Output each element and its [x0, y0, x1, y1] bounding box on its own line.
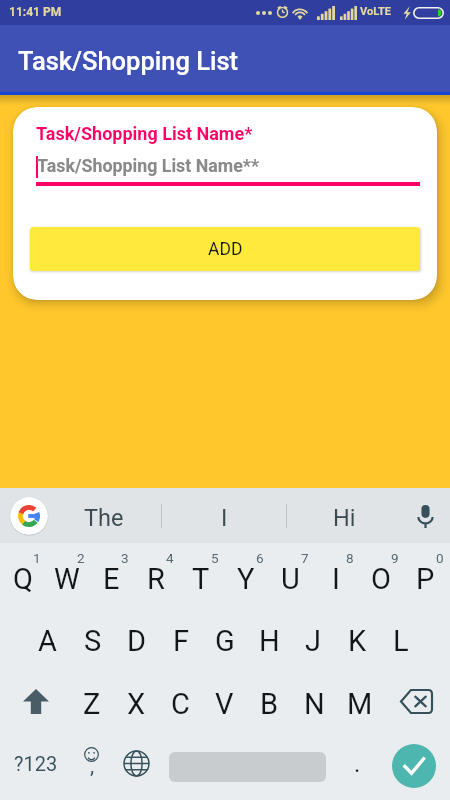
staticText: K: [348, 624, 367, 658]
staticText: V: [215, 687, 234, 721]
button[interactable]: ?123: [0, 733, 72, 800]
staticText: 0: [436, 550, 444, 566]
button[interactable]: G: [203, 606, 247, 670]
button[interactable]: Q: [1, 543, 45, 606]
button[interactable]: Google: [10, 497, 48, 535]
button[interactable]: U: [268, 543, 313, 606]
staticText: D: [127, 624, 147, 658]
staticText: Q: [13, 562, 33, 596]
staticText: 5: [211, 550, 219, 566]
staticText: H: [259, 624, 280, 658]
button[interactable]: X: [114, 670, 158, 733]
button[interactable]: [170, 488, 286, 543]
button[interactable]: .: [326, 733, 378, 800]
staticText: Hi: [333, 504, 356, 532]
button[interactable]: N: [292, 670, 337, 733]
staticText: O: [371, 562, 391, 596]
staticText: Z: [83, 687, 101, 721]
staticText: I: [221, 504, 228, 532]
button[interactable]: Z: [70, 670, 114, 733]
button[interactable]: [163, 733, 326, 800]
button[interactable]: W: [45, 543, 89, 606]
button[interactable]: [55, 488, 170, 543]
button[interactable]: R: [133, 543, 178, 606]
staticText: A: [38, 624, 57, 658]
staticText: 7: [301, 550, 309, 566]
button[interactable]: ADD: [30, 227, 420, 271]
staticText: J: [305, 624, 322, 658]
staticText: W: [54, 562, 80, 596]
staticText: I: [332, 562, 340, 596]
button[interactable]: O: [358, 543, 403, 606]
staticText: G: [215, 624, 235, 658]
button[interactable]: [286, 488, 402, 543]
staticText: .: [354, 750, 361, 778]
staticText: Task/Shopping List Name*: [36, 123, 253, 144]
staticText: 9: [391, 550, 399, 566]
button[interactable]: Y: [223, 543, 268, 606]
staticText: VoLTE: [360, 5, 391, 18]
button[interactable]: D: [115, 606, 159, 670]
staticText: 8: [346, 550, 354, 566]
staticText: ,: [90, 754, 95, 779]
staticText: F: [173, 624, 190, 658]
staticText: 6: [256, 550, 264, 566]
button[interactable]: A: [25, 606, 70, 670]
button[interactable]: E: [89, 543, 133, 606]
staticText: C: [171, 687, 190, 721]
button[interactable]: C: [158, 670, 202, 733]
staticText: E: [103, 562, 120, 596]
button[interactable]: B: [247, 670, 292, 733]
button[interactable]: Done: [378, 733, 450, 800]
staticText: R: [147, 562, 165, 596]
button[interactable]: Backspace: [382, 670, 450, 733]
button[interactable]: V: [202, 670, 247, 733]
staticText: S: [84, 624, 102, 658]
staticText: ADD: [208, 239, 243, 260]
button[interactable]: S: [70, 606, 115, 670]
button[interactable]: Shift: [2, 670, 70, 733]
button[interactable]: H: [247, 606, 291, 670]
button[interactable]: K: [335, 606, 379, 670]
button[interactable]: F: [159, 606, 203, 670]
button[interactable]: M: [337, 670, 382, 733]
button[interactable]: T: [178, 543, 223, 606]
button[interactable]: Emoji and comma: [72, 733, 110, 800]
staticText: L: [393, 624, 409, 658]
staticText: Task/Shopping List: [18, 46, 239, 76]
staticText: B: [260, 687, 279, 721]
staticText: T: [192, 562, 210, 596]
staticText: P: [416, 562, 435, 596]
staticText: X: [127, 687, 146, 721]
button[interactable]: P: [403, 543, 448, 606]
button[interactable]: Change language: [110, 733, 163, 800]
staticText: The: [84, 504, 124, 532]
staticText: ?123: [14, 752, 58, 775]
staticText: 2: [77, 550, 85, 566]
button[interactable]: I: [313, 543, 358, 606]
button[interactable]: L: [379, 606, 423, 670]
staticText: M: [347, 687, 373, 721]
staticText: 3: [121, 550, 129, 566]
button[interactable]: Voice input: [408, 499, 442, 533]
staticText: Y: [237, 562, 255, 596]
button[interactable]: J: [291, 606, 335, 670]
staticText: 11:41 PM: [9, 5, 62, 19]
staticText: U: [281, 562, 300, 596]
staticText: 4: [166, 550, 174, 566]
staticText: 1: [33, 550, 41, 566]
staticText: N: [304, 687, 325, 721]
staticText: Task/Shopping List Name**: [37, 155, 259, 176]
